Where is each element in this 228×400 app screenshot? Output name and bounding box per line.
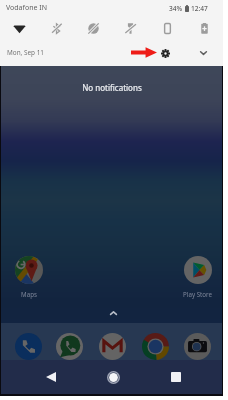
button[interactable]: Battery saver (186, 16, 223, 41)
button[interactable]: Phone (15, 333, 42, 360)
button[interactable]: Gmail (99, 333, 126, 360)
button[interactable]: Back (41, 360, 61, 394)
staticText: Vodafone IN (6, 3, 47, 13)
button[interactable]: Flashlight off (112, 16, 149, 41)
staticText: 34% (169, 4, 183, 13)
staticText: Play Store (183, 290, 212, 298)
button[interactable]: Wi-Fi (0, 16, 38, 41)
button[interactable]: Chrome (142, 333, 169, 360)
staticText: 12:47 (191, 4, 208, 13)
button[interactable]: Settings (158, 46, 172, 60)
button[interactable]: Maps (14, 256, 43, 298)
staticText: Mon, Sep 11 (7, 48, 45, 57)
button[interactable]: Camera (184, 333, 211, 360)
button[interactable]: Home (102, 360, 124, 394)
button[interactable]: Recents (165, 360, 187, 394)
button[interactable]: Do not disturb off (75, 16, 112, 41)
button[interactable]: WhatsApp (56, 333, 83, 360)
staticText: Maps (21, 290, 37, 298)
button[interactable]: Play Store (183, 256, 212, 298)
staticText: No notifications (82, 82, 142, 93)
button[interactable]: Auto rotate (149, 16, 186, 41)
button[interactable]: Bluetooth off (38, 16, 75, 41)
button[interactable]: Expand (196, 46, 210, 60)
button[interactable]: All apps (107, 308, 119, 318)
